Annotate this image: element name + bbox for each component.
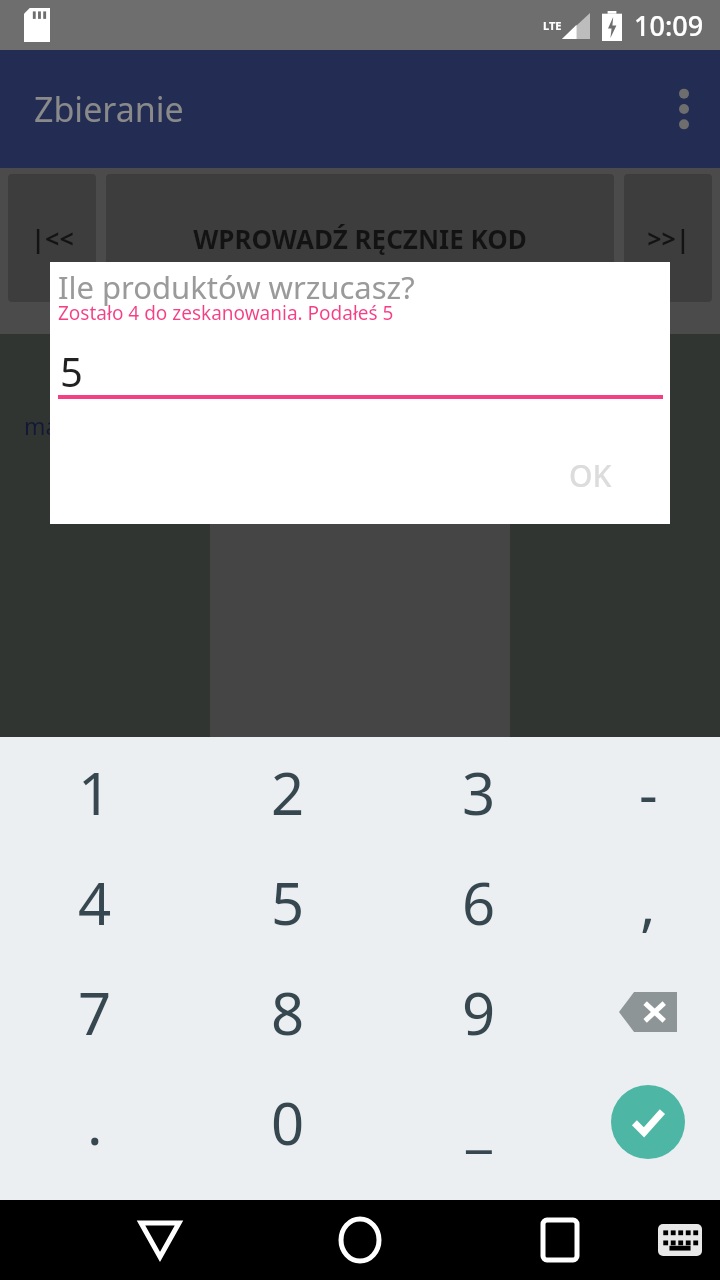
- button[interactable]: Backspace: [560, 957, 720, 1067]
- staticText: .: [87, 1083, 103, 1162]
- staticText: 4: [78, 863, 112, 942]
- button[interactable]: Switch keyboard: [640, 1200, 720, 1280]
- button[interactable]: ,: [560, 847, 720, 957]
- staticText: >>|: [647, 221, 690, 255]
- button[interactable]: 4: [7, 847, 183, 957]
- staticText: Ile produktów wrzucasz?: [58, 266, 415, 308]
- staticText: 5: [271, 863, 305, 942]
- staticText: 3: [462, 753, 496, 832]
- staticText: 10:09: [634, 7, 704, 44]
- staticText: 2: [271, 753, 305, 832]
- staticText: -: [639, 753, 658, 832]
- button[interactable]: _: [391, 1067, 567, 1177]
- button[interactable]: 5: [200, 847, 376, 957]
- button[interactable]: 8: [200, 957, 376, 1067]
- button[interactable]: 7: [7, 957, 183, 1067]
- button[interactable]: -: [560, 737, 720, 847]
- button[interactable]: 3: [391, 737, 567, 847]
- staticText: 0: [271, 1083, 305, 1162]
- staticText: 7: [78, 973, 112, 1052]
- button[interactable]: WPROWADŹ RĘCZNIE KOD: [106, 174, 614, 302]
- staticText: Zbieranie: [34, 86, 184, 132]
- button[interactable]: 2: [200, 737, 376, 847]
- button[interactable]: Confirm: [560, 1067, 720, 1177]
- button[interactable]: 9: [391, 957, 567, 1067]
- staticText: |<<: [31, 221, 74, 255]
- staticText: 5: [60, 344, 83, 398]
- staticText: ,: [640, 863, 656, 942]
- staticText: LTE: [543, 18, 562, 33]
- staticText: 6: [462, 863, 496, 942]
- button[interactable]: Back: [120, 1200, 200, 1280]
- button[interactable]: OK: [520, 440, 660, 510]
- staticText: 1: [78, 753, 112, 832]
- button[interactable]: Home: [320, 1200, 400, 1280]
- staticText: WPROWADŹ RĘCZNIE KOD: [193, 221, 527, 256]
- staticText: 9: [462, 973, 496, 1052]
- button[interactable]: |<<: [8, 174, 96, 302]
- staticText: ma ... ? /: [24, 410, 114, 441]
- button[interactable]: 1: [7, 737, 183, 847]
- staticText: _: [466, 1083, 492, 1162]
- button[interactable]: 0: [200, 1067, 376, 1177]
- staticText: 8: [271, 973, 305, 1052]
- button[interactable]: >>|: [624, 174, 712, 302]
- button[interactable]: More options: [648, 73, 720, 145]
- button[interactable]: Recents: [520, 1200, 600, 1280]
- button[interactable]: .: [7, 1067, 183, 1177]
- staticText: OK: [569, 455, 612, 496]
- button[interactable]: 6: [391, 847, 567, 957]
- staticText: Zostało 4 do zeskanowania. Podałeś 5: [58, 300, 394, 326]
